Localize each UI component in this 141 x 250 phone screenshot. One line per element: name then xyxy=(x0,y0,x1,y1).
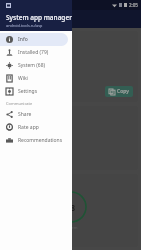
button[interactable]: Copy xyxy=(105,86,133,97)
staticText: Communicate xyxy=(6,101,33,106)
button[interactable]: Settings xyxy=(0,85,68,98)
button[interactable]: Info xyxy=(0,33,68,46)
button[interactable]: Wiki xyxy=(0,72,68,85)
staticText: Info xyxy=(18,36,28,43)
staticText: Rate app xyxy=(18,124,39,131)
staticText: 2:05 xyxy=(129,2,138,8)
button[interactable]: Recommendations xyxy=(0,134,68,147)
staticText: System (68) xyxy=(18,62,46,69)
staticText: Recommendations xyxy=(18,137,63,144)
button[interactable]: Installed (79) xyxy=(0,46,68,59)
staticText: 68 xyxy=(66,202,76,213)
button[interactable]: System (68) xyxy=(0,59,68,72)
staticText: Settings xyxy=(18,88,38,95)
staticText: Share xyxy=(18,111,32,118)
staticText: Wiki xyxy=(18,75,28,82)
staticText: Copy xyxy=(117,88,129,95)
button[interactable]: 68 xyxy=(3,174,138,247)
staticText: System app manager xyxy=(6,13,72,22)
staticText: System xyxy=(64,225,78,230)
staticText: android.tools.ru/asp xyxy=(6,23,43,28)
staticText: Installed (79) xyxy=(18,49,49,56)
button[interactable]: Copy xyxy=(3,31,138,102)
button[interactable] xyxy=(3,106,138,170)
button[interactable]: Rate app xyxy=(0,121,68,134)
button[interactable]: Share xyxy=(0,108,68,121)
